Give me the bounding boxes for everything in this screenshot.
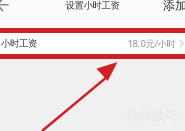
staticText: 18.0元/小时 bbox=[127, 37, 175, 50]
button[interactable]: 添加 bbox=[163, 0, 185, 11]
button[interactable]: 小时工资 bbox=[0, 33, 185, 54]
staticText: 小时工资 bbox=[1, 38, 37, 49]
staticText: 设置小时工资 bbox=[65, 0, 119, 11]
staticText: 软件技巧 bbox=[126, 108, 178, 124]
staticText: 添加 bbox=[163, 0, 185, 13]
button[interactable]: Back bbox=[0, 0, 20, 11]
